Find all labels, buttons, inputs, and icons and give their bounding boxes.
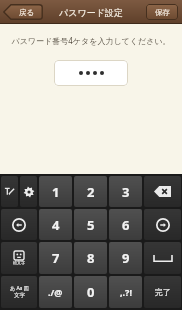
button[interactable]: Switch input mode	[1, 276, 37, 308]
button[interactable]: 4	[39, 209, 72, 240]
staticText: あ Aa 図	[10, 285, 29, 292]
staticText: 7	[52, 249, 60, 267]
button[interactable]: Input mode	[1, 176, 18, 207]
button[interactable]: 2	[74, 176, 107, 207]
button[interactable]: Next	[144, 209, 181, 240]
staticText: ./@	[48, 286, 63, 298]
staticText: 6	[122, 216, 130, 234]
staticText: 4	[52, 216, 60, 234]
staticText: パスワード設定	[59, 7, 123, 18]
staticText: 0	[87, 283, 95, 301]
staticText: 5	[87, 216, 95, 234]
button[interactable]: Emoji	[1, 242, 37, 274]
staticText: 文字	[14, 292, 25, 299]
button[interactable]: ./@	[39, 276, 72, 308]
button[interactable]: 9	[109, 242, 142, 274]
staticText: 9	[122, 249, 130, 267]
button[interactable]	[54, 60, 128, 86]
staticText: ,.?!	[120, 286, 132, 298]
button[interactable]: 完了	[144, 276, 181, 308]
button[interactable]: 0	[74, 276, 107, 308]
staticText: 完了	[155, 287, 171, 297]
button[interactable]: 3	[109, 176, 142, 207]
staticText: パスワード番号4ケタを入力してください。	[11, 35, 171, 46]
staticText: 8	[87, 249, 95, 267]
staticText: 絵文字	[13, 260, 25, 265]
button[interactable]: Keyboard settings	[20, 176, 37, 207]
button[interactable]: ,.?!	[109, 276, 142, 308]
button[interactable]: 1	[39, 176, 72, 207]
button[interactable]: 戻る	[3, 4, 43, 20]
staticText: 3	[122, 183, 130, 201]
button[interactable]: Space	[144, 242, 181, 274]
button[interactable]: 5	[74, 209, 107, 240]
staticText: 戻る	[19, 8, 35, 17]
staticText: 1	[52, 183, 60, 201]
button[interactable]: 保存	[146, 4, 178, 20]
button[interactable]: 7	[39, 242, 72, 274]
button[interactable]: Backspace	[144, 176, 181, 207]
button[interactable]: Previous	[1, 209, 37, 240]
staticText: 保存	[155, 8, 170, 17]
staticText: 2	[87, 183, 95, 201]
button[interactable]: 6	[109, 209, 142, 240]
button[interactable]: 8	[74, 242, 107, 274]
